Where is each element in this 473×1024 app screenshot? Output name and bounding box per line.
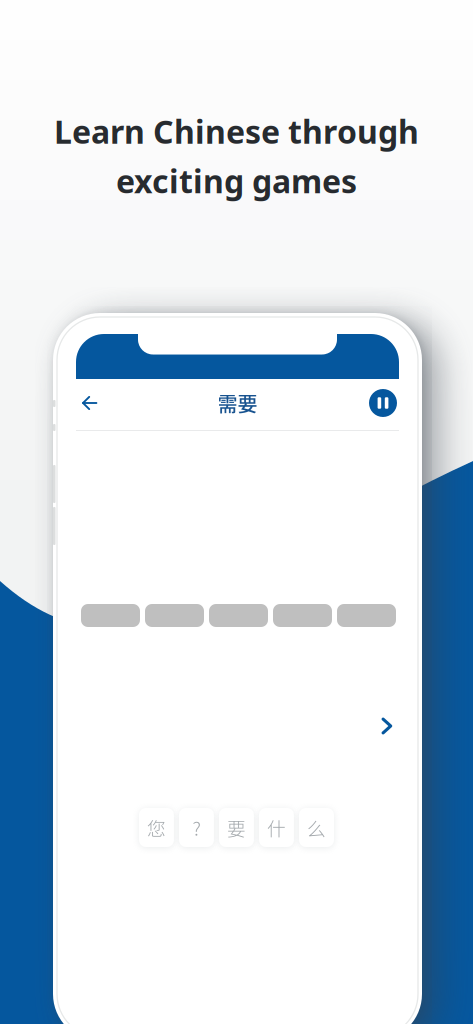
button[interactable]: 么 [299,808,334,847]
staticText: Learn Chinese through [54,110,419,152]
button[interactable]: 您 [139,808,174,847]
staticText: 需要 [217,388,257,417]
staticText: exciting games [116,159,357,202]
staticText: 什 [267,814,286,841]
button[interactable]: 什 [259,808,294,847]
button[interactable]: Next [367,706,407,746]
staticText: ? [192,814,200,841]
staticText: 么 [307,814,326,841]
button[interactable]: Back [71,384,107,422]
staticText: 要 [227,814,246,841]
button[interactable]: 要 [219,808,254,847]
staticText: 您 [147,814,166,841]
button[interactable]: ? [179,808,214,847]
button[interactable]: Pause [364,384,402,422]
